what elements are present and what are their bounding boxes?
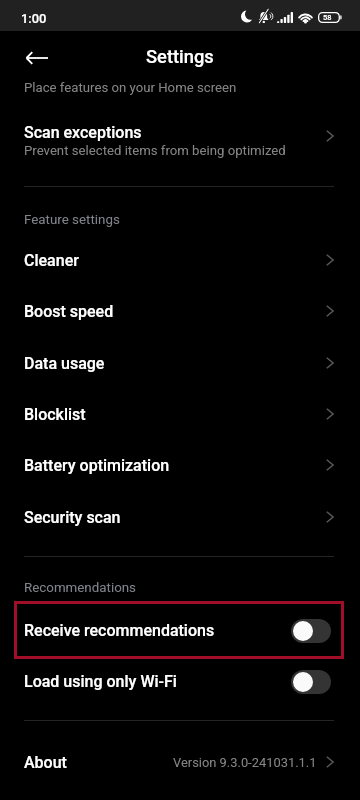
staticText: Recommendations bbox=[24, 580, 137, 596]
staticText: Place features on your Home screen bbox=[24, 80, 237, 95]
staticText: Load using only Wi-Fi bbox=[24, 672, 177, 691]
staticText: Prevent selected items from being optimi… bbox=[24, 143, 286, 158]
button[interactable]: Receive recommendations bbox=[0, 605, 360, 656]
button[interactable]: Boost speed bbox=[0, 286, 360, 337]
button[interactable]: Scan exceptions bbox=[0, 110, 360, 162]
button[interactable]: Back bbox=[16, 37, 57, 78]
button[interactable]: Data usage bbox=[0, 338, 360, 389]
staticText: Version 9.3.0-241031.1.1 bbox=[173, 755, 317, 770]
staticText: Receive recommendations bbox=[24, 621, 215, 640]
button[interactable]: About bbox=[0, 737, 360, 788]
button[interactable]: Blocklist bbox=[0, 389, 360, 440]
button[interactable]: Cleaner bbox=[0, 235, 360, 286]
button[interactable]: Battery optimization bbox=[0, 440, 360, 491]
staticText: 58 bbox=[323, 13, 332, 22]
staticText: About bbox=[24, 753, 67, 772]
staticText: Feature settings bbox=[24, 212, 120, 228]
staticText: Cleaner bbox=[24, 251, 79, 270]
button[interactable]: Load using only Wi-Fi bbox=[0, 656, 360, 707]
staticText: Settings bbox=[146, 46, 214, 67]
staticText: Blocklist bbox=[24, 405, 86, 424]
staticText: Battery optimization bbox=[24, 456, 170, 475]
button[interactable]: Security scan bbox=[0, 492, 360, 543]
staticText: Security scan bbox=[24, 508, 121, 527]
staticText: Data usage bbox=[24, 354, 105, 373]
staticText: Boost speed bbox=[24, 302, 114, 321]
staticText: Scan exceptions bbox=[24, 123, 142, 142]
staticText: 1:00 bbox=[21, 11, 47, 26]
